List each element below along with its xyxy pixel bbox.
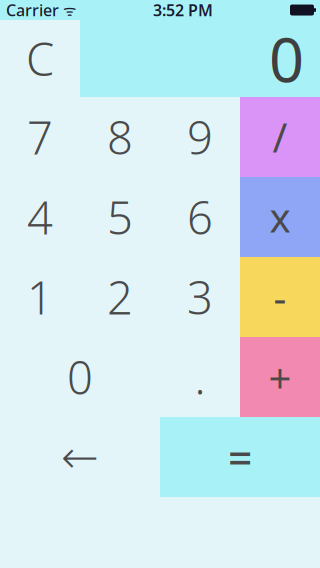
staticText: =	[228, 429, 252, 485]
button[interactable]: 4	[0, 177, 80, 257]
button[interactable]: 7	[0, 97, 80, 177]
staticText: 8	[107, 107, 133, 167]
staticText: /	[272, 110, 287, 163]
button[interactable]: 3	[160, 257, 240, 337]
staticText: .	[194, 347, 205, 407]
button[interactable]: Plus	[240, 337, 320, 417]
staticText: C	[26, 28, 54, 89]
button[interactable]: 9	[160, 97, 240, 177]
staticText: +	[268, 350, 291, 403]
button[interactable]: 0	[0, 337, 160, 417]
button[interactable]: 6	[160, 177, 240, 257]
button[interactable]: Backspace	[0, 417, 160, 497]
button[interactable]: C	[0, 20, 80, 97]
button[interactable]: Minus	[240, 257, 320, 337]
staticText: 1	[27, 267, 53, 327]
button[interactable]: Divide	[240, 97, 320, 177]
staticText: ᯤ	[59, 0, 76, 20]
staticText: 6	[187, 187, 213, 247]
staticText: 2	[107, 267, 133, 327]
button[interactable]: Equals	[160, 417, 320, 497]
button[interactable]: 8	[80, 97, 160, 177]
staticText: 0	[269, 18, 304, 99]
staticText: Carrier	[6, 0, 59, 21]
staticText: 3	[187, 267, 213, 327]
staticText: 3:52 PM	[153, 0, 213, 21]
staticText: ←	[61, 431, 99, 483]
staticText: 7	[27, 107, 53, 167]
staticText: x	[269, 190, 290, 243]
button[interactable]: 5	[80, 177, 160, 257]
button[interactable]: .	[160, 337, 240, 417]
button[interactable]: 1	[0, 257, 80, 337]
button[interactable]: Multiply	[240, 177, 320, 257]
staticText: -	[273, 270, 286, 323]
staticText: 9	[187, 107, 213, 167]
staticText: 4	[27, 187, 53, 247]
staticText: 5	[107, 187, 133, 247]
staticText: 0	[67, 347, 93, 407]
button[interactable]: 2	[80, 257, 160, 337]
